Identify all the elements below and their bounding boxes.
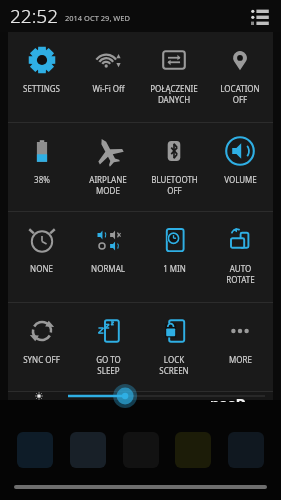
staticText: VOLUME (224, 174, 257, 185)
staticText: SETTINGS (23, 83, 60, 94)
button[interactable]: SYNC OFF (8, 303, 75, 391)
button[interactable]: 38% (8, 123, 75, 211)
button[interactable]: LOCATION OFF (207, 32, 273, 122)
staticText: NONE (30, 263, 53, 274)
button[interactable]: Brightness (8, 392, 273, 400)
staticText: LOCK SCREEN (159, 354, 189, 376)
staticText: MORE (229, 354, 252, 365)
staticText: POŁĄCZENIE DANYCH (150, 83, 198, 105)
button[interactable]: Wi-Fi Off (75, 32, 141, 122)
button[interactable]: NORMAL (75, 212, 141, 302)
button[interactable]: VOLUME (207, 123, 273, 211)
button[interactable]: NONE (8, 212, 75, 302)
button[interactable]: Users (247, 3, 273, 29)
staticText: GO TO SLEEP (96, 354, 121, 376)
staticText: BLUETOOTH OFF (151, 174, 198, 196)
button[interactable]: POŁĄCZENIE DANYCH (141, 32, 207, 122)
button[interactable]: BLUETOOTH OFF (141, 123, 207, 211)
staticText: AUTO ROTATE (226, 263, 255, 285)
button[interactable]: AIRPLANE MODE (75, 123, 141, 211)
staticText: AIRPLANE MODE (89, 174, 127, 196)
staticText: LOCATION OFF (220, 83, 260, 105)
button[interactable]: AUTO ROTATE (207, 212, 273, 302)
button[interactable]: LOCK SCREEN (141, 303, 207, 391)
button[interactable]: GO TO SLEEP (75, 303, 141, 391)
staticText: 1 MIN (163, 263, 186, 274)
button[interactable]: 1 MIN (141, 212, 207, 302)
staticText: Wi-Fi Off (92, 83, 125, 94)
staticText: 38% (34, 174, 50, 185)
staticText: SYNC OFF (23, 354, 60, 365)
button[interactable]: SETTINGS (8, 32, 75, 122)
staticText: neeD (210, 394, 247, 402)
staticText: 22:52 (10, 3, 59, 29)
button[interactable]: MORE (207, 303, 273, 391)
staticText: NORMAL (91, 263, 125, 274)
staticText: 2014 OCT 29, WED (65, 13, 130, 23)
